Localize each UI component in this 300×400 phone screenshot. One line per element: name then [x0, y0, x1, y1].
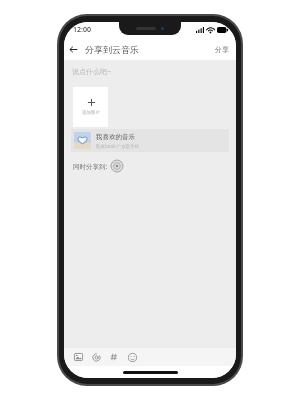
button[interactable]: Mention	[87, 348, 105, 366]
staticText: 添加图片	[82, 110, 100, 116]
staticText: 歌单book·广东歌手榜	[96, 143, 140, 149]
button[interactable]: Back	[64, 40, 82, 58]
button[interactable]: 同时分享到朋友圈	[111, 160, 123, 172]
staticText: 说点什么吧~	[72, 67, 112, 77]
staticText: 12:00	[73, 25, 91, 35]
button[interactable]: Topic	[105, 348, 123, 366]
button[interactable]: 分享	[208, 41, 236, 58]
staticText: 同时分享到:	[73, 162, 108, 171]
button[interactable]: 添加图片	[73, 87, 108, 127]
staticText: 分享	[215, 45, 229, 54]
staticText: 我喜欢的音乐	[96, 133, 135, 141]
button[interactable]: Emoji	[123, 348, 141, 366]
button[interactable]: Add image	[69, 348, 87, 366]
staticText: 分享到云音乐	[85, 44, 139, 55]
button[interactable]: 我喜欢的音乐	[71, 129, 229, 152]
